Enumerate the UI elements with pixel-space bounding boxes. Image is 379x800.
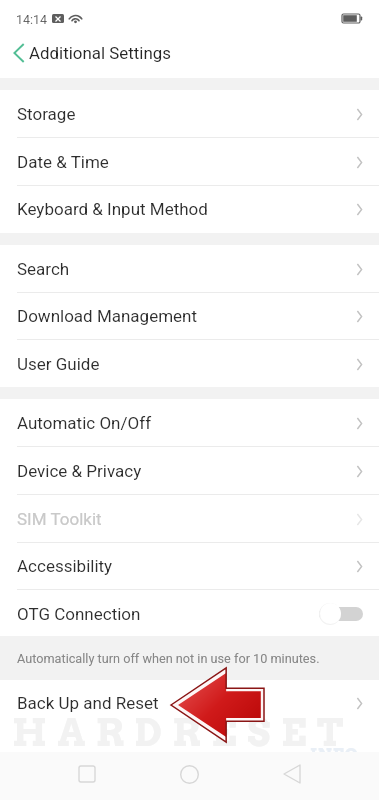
button[interactable]: Recents xyxy=(62,752,112,798)
button[interactable]: Accessibility xyxy=(0,542,379,590)
staticText: HARDRESET xyxy=(12,709,355,755)
staticText: Accessibility xyxy=(17,556,113,576)
staticText: SIM Toolkit xyxy=(17,509,102,529)
staticText: Automatically turn off when not in use f… xyxy=(17,651,320,666)
button[interactable]: User Guide xyxy=(0,340,379,388)
button[interactable]: Automatic On/Off xyxy=(0,399,379,447)
staticText: OTG Connection xyxy=(17,604,141,624)
button[interactable]: Download Management xyxy=(0,292,379,340)
staticText: Search xyxy=(17,259,70,279)
button[interactable]: Keyboard & Input Method xyxy=(0,185,379,233)
button[interactable]: Device & Privacy xyxy=(0,447,379,495)
button[interactable]: Back Up and Reset xyxy=(0,679,379,727)
button[interactable]: Search xyxy=(0,245,379,293)
staticText: 14:14 xyxy=(16,12,48,27)
staticText: Back Up and Reset xyxy=(17,693,159,713)
button[interactable]: SIM Toolkit xyxy=(0,495,379,543)
staticText: Download Management xyxy=(17,306,198,326)
button[interactable]: Storage xyxy=(0,90,379,138)
button[interactable]: Home xyxy=(164,752,214,798)
staticText: User Guide xyxy=(17,354,100,374)
staticText: INFO xyxy=(310,745,359,766)
staticText: Additional Settings xyxy=(29,43,171,63)
button[interactable]: Back xyxy=(3,35,33,71)
button[interactable]: Back xyxy=(267,752,317,798)
staticText: Date & Time xyxy=(17,152,109,172)
staticText: Automatic On/Off xyxy=(17,413,152,433)
button[interactable]: OTG Connection xyxy=(0,590,379,638)
staticText: Keyboard & Input Method xyxy=(17,199,208,219)
staticText: Storage xyxy=(17,104,76,124)
button[interactable]: Date & Time xyxy=(0,138,379,186)
staticText: Device & Privacy xyxy=(17,461,142,481)
